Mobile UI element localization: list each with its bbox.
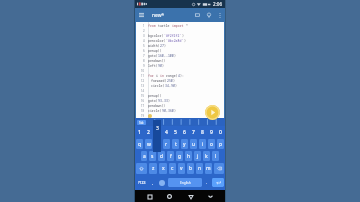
staticText: 5	[143, 44, 145, 48]
button[interactable]: Shift	[136, 163, 147, 174]
staticText: ,	[169, 84, 171, 88]
staticText: )	[173, 79, 175, 83]
button[interactable]: 0	[216, 126, 225, 138]
button[interactable]: Back	[185, 191, 196, 202]
button[interactable]: r	[163, 139, 170, 149]
staticText: 9	[143, 64, 145, 68]
staticText: p	[148, 114, 150, 118]
button[interactable]: t	[172, 139, 179, 149]
staticText: 7	[192, 129, 195, 136]
staticText: pendown()	[148, 104, 166, 108]
staticText: p	[219, 141, 222, 148]
button[interactable]: q	[136, 139, 143, 149]
staticText: 15	[141, 94, 145, 98]
staticText: circle(	[148, 109, 162, 113]
button[interactable]: h	[185, 151, 192, 161]
staticText: )	[174, 109, 176, 113]
button[interactable]: Backspace	[214, 163, 224, 174]
button[interactable]: a	[141, 151, 147, 161]
staticText: *	[186, 24, 188, 28]
button[interactable]: j	[194, 151, 201, 161]
button[interactable]: u	[190, 139, 197, 149]
button[interactable]: k	[203, 151, 210, 161]
button[interactable]: ,	[149, 175, 157, 190]
button[interactable]: Menu	[135, 8, 148, 22]
staticText: 19	[141, 114, 145, 118]
button[interactable]: g	[176, 151, 183, 161]
staticText: x	[162, 165, 165, 172]
button[interactable]: 4	[162, 126, 171, 138]
button[interactable]: Recents	[144, 191, 155, 202]
staticText: 34	[165, 84, 169, 88]
staticText: 11	[141, 74, 145, 78]
button[interactable]: .	[203, 175, 211, 190]
button[interactable]: Tab	[137, 120, 146, 125]
button[interactable]: Save	[192, 8, 203, 22]
button[interactable]: Enter	[212, 178, 224, 187]
button[interactable]: 1	[135, 126, 144, 138]
button[interactable]: Home	[164, 191, 175, 202]
staticText: 33	[164, 99, 168, 103]
staticText: 250	[167, 79, 173, 83]
button[interactable]: 3	[153, 126, 162, 138]
staticText: t	[175, 141, 177, 148]
button[interactable]: o	[208, 139, 215, 149]
staticText: 8	[143, 59, 145, 63]
staticText: for	[148, 74, 156, 78]
staticText: 360	[168, 109, 174, 113]
staticText: turtle	[158, 24, 172, 28]
button[interactable]: w	[145, 139, 152, 149]
button[interactable]: ?123	[135, 175, 149, 190]
staticText: )	[162, 64, 164, 68]
button[interactable]: s	[149, 151, 156, 161]
staticText: w	[147, 141, 151, 148]
staticText: forward(	[151, 79, 167, 83]
button[interactable]: n	[196, 163, 203, 174]
button[interactable]: English	[168, 178, 202, 187]
button[interactable]: 2	[144, 126, 153, 138]
staticText: y	[183, 141, 186, 148]
button[interactable]: f	[167, 151, 174, 161]
button[interactable]: z	[149, 163, 157, 174]
staticText: goto(	[148, 99, 158, 103]
button[interactable]: v	[178, 163, 185, 174]
staticText: bgcolor(	[148, 34, 164, 38]
button[interactable]: Hints	[203, 8, 214, 22]
staticText: '#bc2a8d'	[166, 39, 184, 43]
button[interactable]: d	[158, 151, 165, 161]
staticText: .	[206, 180, 208, 185]
button[interactable]: m	[205, 163, 212, 174]
staticText: 90	[158, 64, 162, 68]
staticText: u	[192, 141, 196, 148]
staticText: pendown()	[148, 59, 166, 63]
staticText: 9	[210, 129, 213, 136]
button[interactable]: y	[181, 139, 188, 149]
staticText: d	[160, 153, 163, 160]
staticText: 13	[141, 84, 145, 88]
staticText: ,	[166, 109, 168, 113]
button[interactable]: 6	[180, 126, 189, 138]
staticText: 4	[165, 129, 168, 136]
button[interactable]: Hide keyboard	[205, 191, 216, 202]
staticText: ,	[152, 180, 154, 185]
button[interactable]: p	[217, 139, 224, 149]
staticText: o	[210, 141, 213, 148]
button[interactable]: 9	[207, 126, 216, 138]
button[interactable]: x	[159, 163, 167, 174]
button[interactable]: c	[169, 163, 176, 174]
staticText: ,	[164, 54, 166, 58]
button[interactable]: More options	[214, 8, 225, 22]
staticText: )	[164, 44, 166, 48]
button[interactable]: Emoji	[159, 180, 165, 186]
button[interactable]: l	[212, 151, 219, 161]
button[interactable]: 7	[189, 126, 198, 138]
button[interactable]: Run	[205, 105, 220, 120]
button[interactable]: b	[187, 163, 194, 174]
button[interactable]: 5	[171, 126, 180, 138]
staticText: ?123	[138, 180, 146, 185]
button[interactable]: i	[199, 139, 206, 149]
staticText: )	[174, 54, 176, 58]
button[interactable]: 8	[198, 126, 207, 138]
